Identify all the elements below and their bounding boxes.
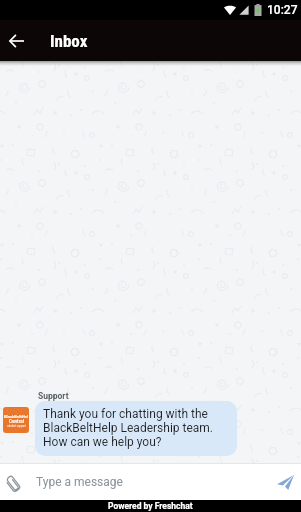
button[interactable]: Back (0, 20, 41, 61)
staticText: 10:27 (267, 3, 298, 17)
staticText: Support (38, 391, 69, 401)
button[interactable]: Attach file (0, 464, 36, 500)
staticText: Type a message (36, 475, 264, 489)
staticText: Powered by Freshchat (108, 501, 193, 511)
button[interactable]: Send (264, 464, 300, 500)
staticText: Central (9, 419, 24, 424)
staticText: BlackBeltHelp (3, 414, 29, 419)
staticText: Thank you for chatting with the BlackBel… (43, 407, 229, 449)
staticText: Inbox (50, 31, 88, 51)
staticText: student support (7, 425, 26, 428)
